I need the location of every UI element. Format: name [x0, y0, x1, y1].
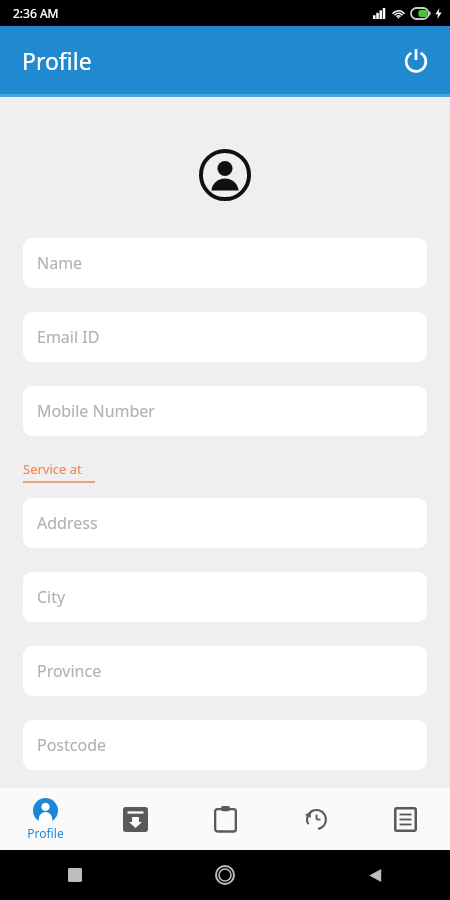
button[interactable]: Mobile Number [23, 386, 427, 436]
staticText: Profile [22, 45, 92, 76]
staticText: Mobile Number [37, 400, 155, 422]
button[interactable]: Inbox [90, 788, 180, 850]
staticText: Address [37, 512, 98, 534]
button[interactable]: History [270, 788, 360, 850]
button[interactable]: Province [23, 646, 427, 696]
button[interactable]: City [23, 572, 427, 622]
button[interactable]: Postcode [23, 720, 427, 770]
staticText: Email ID [37, 326, 100, 348]
staticText: Profile [27, 825, 64, 841]
staticText: 2:36 AM [13, 5, 59, 21]
staticText: Province [37, 660, 102, 682]
button[interactable]: Address [23, 498, 427, 548]
button[interactable]: Orders [180, 788, 270, 850]
button[interactable]: Email ID [23, 312, 427, 362]
staticText: Name [37, 252, 83, 274]
button[interactable]: Profile [0, 788, 90, 850]
staticText: Service at [23, 460, 82, 478]
button[interactable]: Name [23, 238, 427, 288]
staticText: Postcode [37, 734, 107, 756]
staticText: City [37, 586, 66, 608]
button[interactable]: Logout [394, 38, 438, 82]
button[interactable]: Records [360, 788, 450, 850]
